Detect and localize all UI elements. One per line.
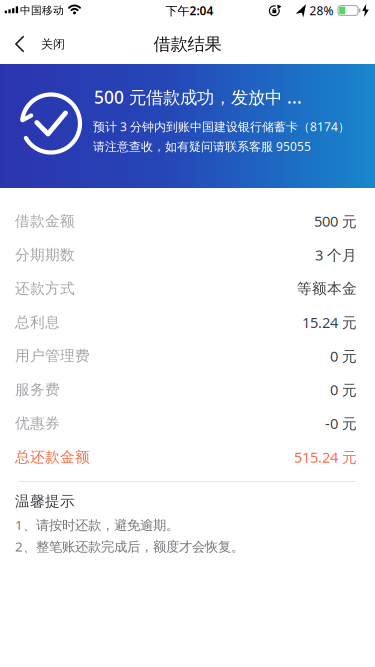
staticText: 总还款金额 [15,448,90,466]
staticText: 借款结果 [153,34,221,55]
staticText: 借款金额 [15,212,75,230]
staticText: 15.24 元 [302,312,357,332]
staticText: 0 元 [330,380,357,399]
staticText: 中国移动 [20,4,64,17]
staticText: 等额本金 [297,279,357,297]
staticText: 温馨提示 [15,492,75,510]
staticText: 515.24 元 [294,447,357,467]
staticText: 28% [309,2,333,18]
staticText: 总利息 [15,313,60,331]
staticText: 关闭 [41,37,65,51]
staticText: 请注意查收，如有疑问请联系客服 95055 [93,138,311,154]
staticText: 用户管理费 [15,347,90,365]
button[interactable]: 关闭 [0,20,65,64]
staticText: 1、请按时还款，避免逾期。 [15,516,179,534]
staticText: 3 个月 [315,245,357,265]
staticText: 500 元 [314,211,357,231]
staticText: 500 元借款成功，发放中 ... [94,86,302,109]
staticText: 还款方式 [15,279,75,297]
staticText: 0 元 [330,346,357,366]
staticText: 服务费 [15,381,60,399]
staticText: 优惠券 [15,414,60,432]
staticText: 分期期数 [15,246,75,264]
staticText: 下午2:04 [165,2,213,18]
staticText: -0 元 [325,414,357,433]
staticText: 2、整笔账还款完成后，额度才会恢复。 [15,537,244,555]
staticText: 预计 3 分钟内到账中国建设银行储蓄卡（8174） [93,119,350,134]
